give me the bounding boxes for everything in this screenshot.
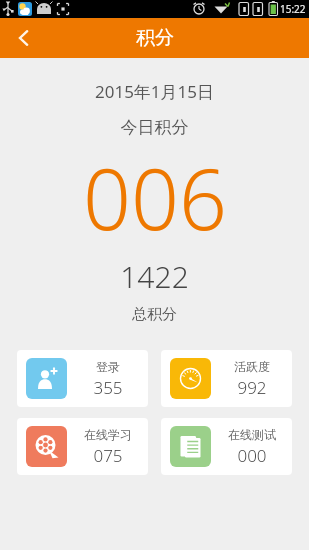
button[interactable]: Online study (17, 418, 148, 475)
staticText: 2015年1月15日 (0, 80, 309, 103)
staticText: 355 (93, 376, 123, 399)
button[interactable]: Online test (161, 418, 292, 475)
staticText: 1422 (0, 256, 309, 297)
staticText: 15:22 (280, 2, 306, 16)
staticText: 992 (237, 376, 267, 399)
other: Login (26, 358, 67, 399)
staticText: 今日积分 (0, 117, 309, 138)
button[interactable]: Login (17, 350, 148, 407)
other: Activity (170, 358, 211, 399)
staticText: 075 (93, 444, 123, 467)
staticText: 006 (83, 140, 227, 234)
staticText: 在线学习 (84, 427, 132, 442)
other: Online test (170, 426, 211, 467)
button[interactable]: Back (0, 18, 48, 58)
staticText: 总积分 (0, 305, 309, 324)
other: Online study (26, 426, 67, 467)
staticText: 活跃度 (234, 359, 270, 374)
staticText: 积分 (136, 26, 174, 50)
staticText: 000 (237, 444, 267, 467)
button[interactable]: Activity (161, 350, 292, 407)
staticText: 在线测试 (228, 427, 276, 442)
staticText: 登录 (96, 359, 120, 374)
